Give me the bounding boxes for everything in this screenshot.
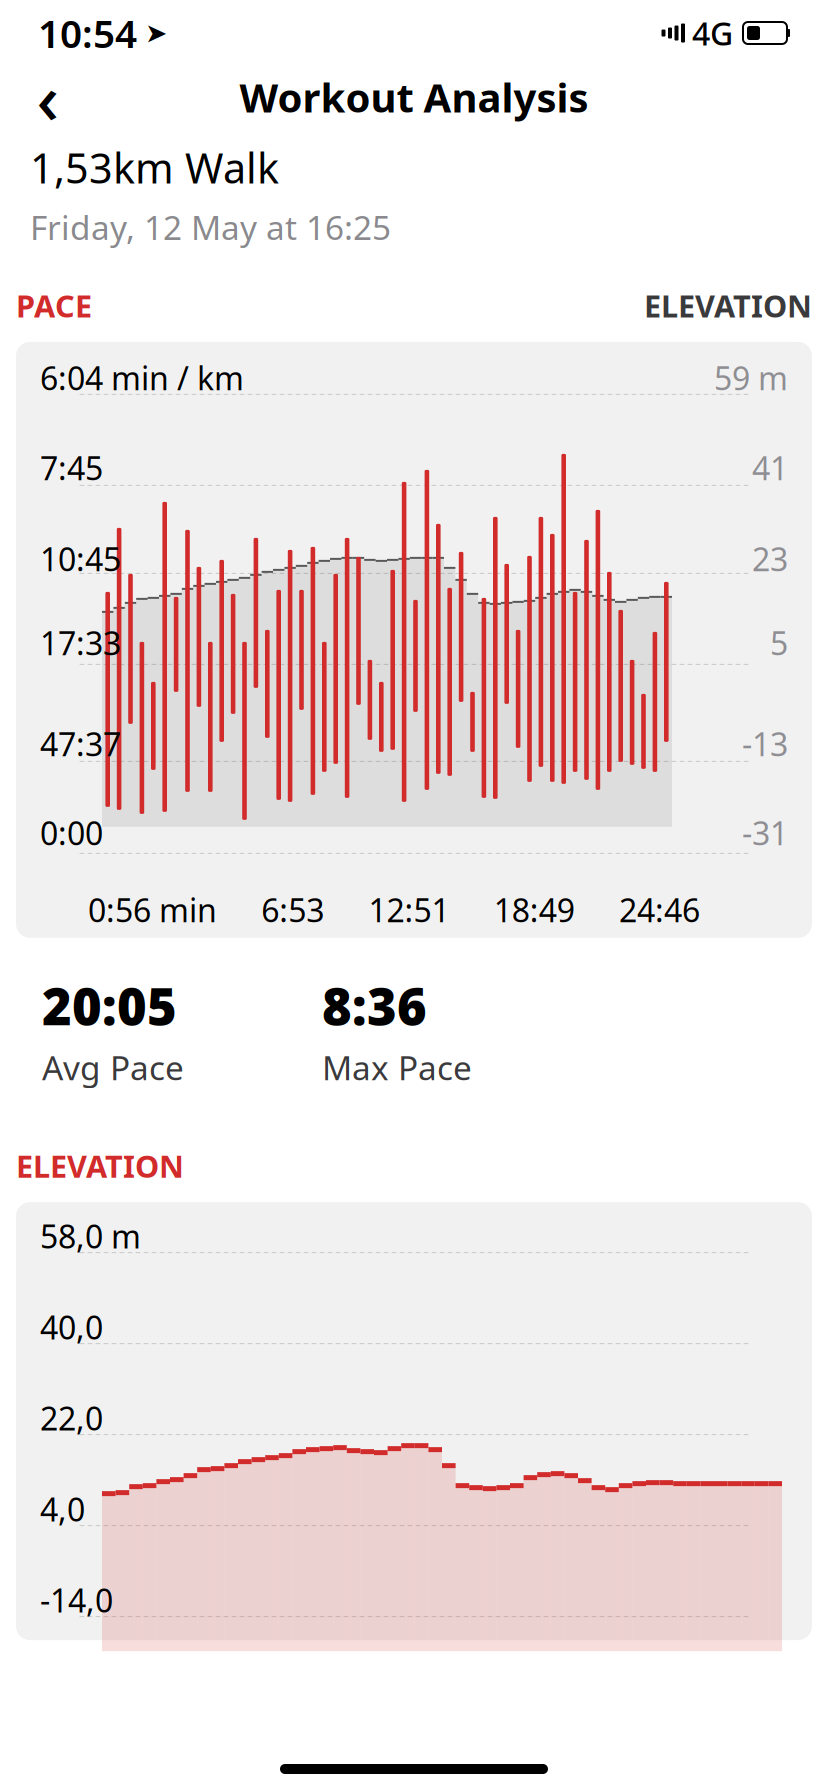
staticText: 6:04 min / km [40, 357, 244, 399]
staticText: Avg Pace [42, 1045, 184, 1089]
staticText: PACE [16, 285, 92, 326]
staticText: 41 [752, 447, 788, 489]
staticText: 23 [752, 538, 788, 580]
staticText: Max Pace [322, 1045, 472, 1089]
staticText: Friday, 12 May at 16:25 [30, 205, 391, 249]
staticText: -14,0 [40, 1579, 113, 1621]
staticText: 20:05 [42, 972, 177, 1039]
staticText: ELEVATION [16, 1145, 184, 1186]
staticText: 4,0 [40, 1488, 85, 1530]
staticText: 5 [770, 622, 788, 664]
staticText: 17:33 [40, 622, 121, 664]
staticText: 24:46 [619, 889, 700, 931]
staticText: 4G [692, 12, 733, 54]
button[interactable]: Back [18, 67, 78, 127]
staticText: ELEVATION [644, 285, 812, 326]
staticText: 10:45 [40, 538, 121, 580]
staticText: 59 m [714, 357, 788, 399]
staticText: -13 [742, 723, 788, 765]
staticText: 0:00 [40, 812, 103, 854]
staticText: 58,0 m [40, 1215, 141, 1257]
staticText: 0:56 min [88, 889, 217, 931]
staticText: ➤ [145, 18, 167, 48]
staticText: 10:54 [38, 7, 137, 59]
staticText: 6:53 [261, 889, 324, 931]
staticText: 40,0 [40, 1306, 103, 1348]
staticText: 12:51 [368, 889, 449, 931]
staticText: 47:37 [40, 723, 121, 765]
staticText: -31 [742, 812, 788, 854]
staticText: 7:45 [40, 447, 103, 489]
staticText: 18:49 [494, 889, 575, 931]
staticText: ‹ [36, 51, 59, 143]
staticText: Workout Analysis [239, 70, 588, 123]
staticText: 22,0 [40, 1397, 103, 1439]
staticText: 1,53km Walk [30, 140, 279, 195]
staticText: 8:36 [322, 972, 427, 1039]
